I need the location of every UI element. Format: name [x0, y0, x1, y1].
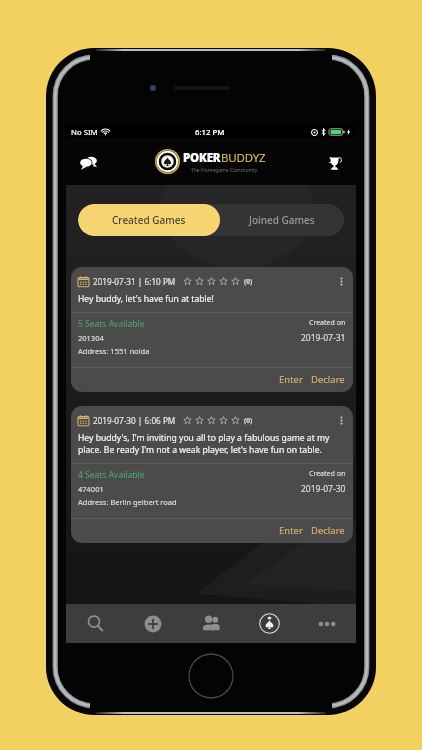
staticText: Address: 1551 noida — [78, 346, 150, 356]
button[interactable]: Created Games — [78, 204, 220, 236]
staticText: Joined Games — [249, 213, 315, 227]
button[interactable]: Friends — [182, 604, 240, 643]
staticText: 2019-07-30 | 6:06 PM — [93, 415, 176, 426]
button[interactable]: 2019-07-31 | 6:10 PM — [71, 267, 353, 392]
button[interactable]: Joined Games — [220, 204, 344, 236]
staticText: 474001 — [78, 484, 104, 494]
button[interactable]: Home — [240, 604, 298, 643]
staticText: Created on — [309, 469, 346, 479]
staticText: Hey buddy, let's have fun at table! — [78, 293, 214, 305]
staticText: 201304 — [78, 333, 104, 343]
staticText: Declare — [311, 524, 345, 537]
button[interactable]: Declare — [309, 523, 347, 538]
staticText: (0) — [244, 277, 253, 286]
staticText: The Homegame Community — [191, 167, 258, 174]
button[interactable]: Create game — [124, 604, 182, 643]
staticText: BUDDYZ — [221, 150, 266, 166]
staticText: Declare — [311, 373, 345, 386]
staticText: 2019-07-30 — [301, 483, 346, 495]
button[interactable]: Declare — [309, 372, 347, 387]
staticText: (0) — [244, 416, 253, 425]
staticText: 5 Seats Available — [78, 318, 145, 330]
staticText: Enter — [279, 524, 303, 537]
staticText: Enter — [279, 373, 303, 386]
staticText: 2019-07-31 | 6:10 PM — [93, 276, 176, 287]
button[interactable]: More options — [335, 414, 348, 427]
button[interactable]: More options — [335, 275, 348, 288]
button[interactable]: More — [298, 604, 356, 643]
staticText: 4 Seats Available — [78, 469, 145, 481]
button[interactable]: Search — [66, 604, 124, 643]
staticText: Created Games — [112, 213, 186, 227]
button[interactable]: Messages — [74, 148, 102, 176]
staticText: Hey buddy's, I'm inviting you all to pla… — [78, 432, 346, 456]
staticText: 6:12 PM — [195, 127, 225, 138]
staticText: Created on — [309, 318, 346, 328]
staticText: Address: Berlin gelbert road — [78, 497, 177, 507]
staticText: 2019-07-31 — [301, 332, 346, 344]
button[interactable]: Leaderboard — [320, 148, 348, 176]
button[interactable]: 2019-07-30 | 6:06 PM — [71, 406, 353, 543]
button[interactable]: Enter — [277, 523, 305, 538]
staticText: POKER — [183, 150, 221, 166]
button[interactable]: Enter — [277, 372, 305, 387]
staticText: No SIM — [71, 127, 98, 138]
